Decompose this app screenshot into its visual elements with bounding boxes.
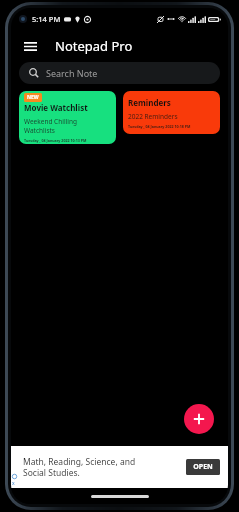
button[interactable]: Open navigation menu [17,33,43,59]
button[interactable]: Search Note [19,62,220,84]
staticText: Notepad Pro [55,37,133,55]
button[interactable]: Math, Reading, Science, and Social Studi… [11,446,228,488]
staticText: Weekend Chilling Watchlists [24,117,77,135]
staticText: OPEN [193,462,213,472]
staticText: x [12,480,15,487]
staticText: Movie Watchlist [24,102,88,113]
button[interactable]: Reminders [123,91,220,134]
staticText: Tuesday , 04 January 2022 10:13 PM [24,138,87,143]
staticText: NEW [27,94,39,101]
staticText: Reminders [128,97,171,108]
button[interactable]: Add note [184,404,214,434]
staticText: Math, Reading, Science, and Social Studi… [23,456,186,478]
staticText: Tuesday , 04 January 2022 10:18 PM [128,124,191,129]
staticText: 5:14 PM [32,14,61,24]
button[interactable]: NEW [19,91,116,144]
button[interactable]: OPEN [186,459,220,475]
staticText: Search Note [46,67,98,79]
staticText: 2022 Reminders [128,112,178,121]
